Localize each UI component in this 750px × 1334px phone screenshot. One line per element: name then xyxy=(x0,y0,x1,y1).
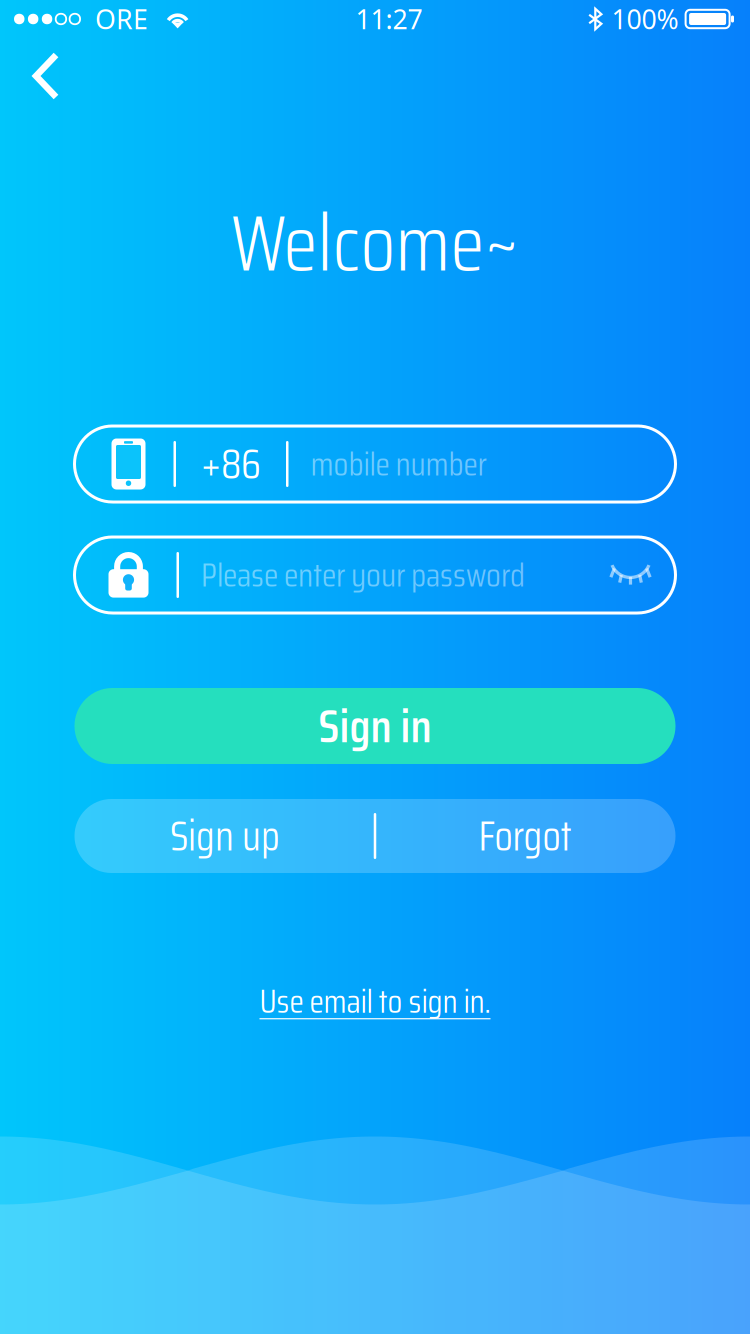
staticText: Sign in xyxy=(318,689,431,763)
button[interactable]: Show password xyxy=(611,547,675,603)
staticText: Sign up xyxy=(170,803,280,869)
staticText: mobile number xyxy=(310,438,486,490)
button[interactable]: Sign in xyxy=(74,688,675,764)
button[interactable]: Forgot xyxy=(375,799,675,873)
button[interactable]: Back xyxy=(0,38,86,114)
staticText: 100% xyxy=(612,1,679,37)
staticText: Please enter your password xyxy=(201,549,525,601)
staticText: 11:27 xyxy=(356,1,423,37)
staticText: Use email to sign in. xyxy=(259,975,490,1027)
button[interactable]: Use email to sign in. xyxy=(245,967,504,1035)
staticText: ORE xyxy=(95,1,148,37)
button[interactable]: Sign up xyxy=(75,799,375,873)
staticText: +86 xyxy=(201,431,261,497)
staticText: Forgot xyxy=(478,803,571,869)
staticText: Welcome~ xyxy=(231,181,518,305)
